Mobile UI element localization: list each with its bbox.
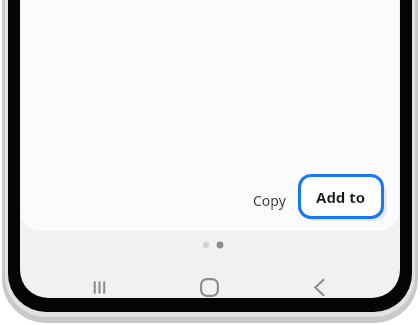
staticText: Add to <box>316 187 366 207</box>
button[interactable]: Back <box>296 264 342 310</box>
button[interactable]: Add to <box>298 174 384 219</box>
staticText: Copy <box>253 191 286 210</box>
button[interactable]: Copy <box>241 184 297 216</box>
button[interactable]: Recent apps <box>76 264 122 310</box>
button[interactable]: Home <box>186 264 232 310</box>
